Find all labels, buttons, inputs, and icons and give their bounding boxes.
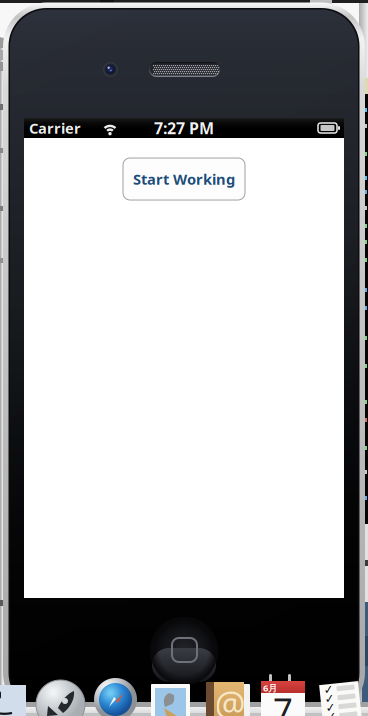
staticText: 7:27 PM bbox=[154, 117, 214, 139]
staticText: ✓ bbox=[325, 682, 335, 695]
staticText: @ bbox=[214, 680, 245, 716]
staticText: ✓ bbox=[325, 691, 335, 704]
staticText: ✓ bbox=[325, 709, 335, 716]
staticText: 7 bbox=[273, 687, 293, 716]
button[interactable]: Start Working bbox=[123, 158, 245, 200]
staticText: Carrier bbox=[29, 118, 81, 138]
staticText: ✓ bbox=[325, 700, 335, 713]
staticText: Start Working bbox=[133, 169, 235, 189]
staticText: 6月 bbox=[263, 682, 277, 694]
